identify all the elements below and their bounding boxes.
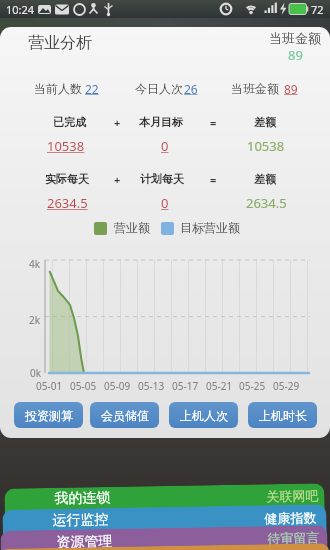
button[interactable] xyxy=(0,543,330,550)
button[interactable]: 上机时长 xyxy=(248,402,317,428)
staticText: 4k xyxy=(29,257,41,271)
staticText: 会员储值 xyxy=(101,408,149,423)
staticText: 05-21 xyxy=(206,379,233,393)
staticText: 05-09 xyxy=(104,379,131,393)
staticText: 上机时长 xyxy=(259,408,307,423)
staticText: 健康指数 xyxy=(264,509,317,526)
button[interactable]: 26 xyxy=(184,81,198,97)
staticText: 10538 xyxy=(247,137,285,155)
staticText: 计划每天 xyxy=(140,172,184,186)
staticText: 2k xyxy=(29,313,41,327)
button[interactable]: 会员储值 xyxy=(90,402,159,428)
staticText: 上机人次 xyxy=(180,408,228,423)
button[interactable]: 22 xyxy=(85,81,99,97)
staticText: 2634.5 xyxy=(246,194,287,212)
staticText: 营业分析 xyxy=(28,33,92,53)
staticText: + xyxy=(114,172,121,187)
staticText: 今日人次 xyxy=(135,81,183,96)
staticText: 本月目标 xyxy=(139,115,183,129)
staticText: 05-13 xyxy=(138,379,165,393)
staticText: + xyxy=(114,115,121,130)
staticText: 当班金额 xyxy=(231,81,279,96)
staticText: 已完成 xyxy=(53,115,86,129)
staticText: = xyxy=(210,115,217,130)
staticText: 0 xyxy=(161,137,169,155)
button[interactable]: 运行监控 xyxy=(2,504,328,550)
staticText: 0k xyxy=(30,366,42,380)
staticText: 05-29 xyxy=(273,379,300,393)
staticText: 89 xyxy=(288,46,303,64)
staticText: 运行监控 xyxy=(52,511,109,530)
button[interactable]: 我的连锁 xyxy=(4,483,326,550)
staticText: 05-01 xyxy=(36,379,63,393)
staticText: 投资测算 xyxy=(25,408,73,423)
staticText: 当班金额 xyxy=(269,30,321,46)
staticText: 资源管理 xyxy=(56,533,113,550)
staticText: 72 xyxy=(311,2,324,17)
staticText: 待审留言 xyxy=(267,529,320,546)
staticText: 05-25 xyxy=(239,379,266,393)
staticText: 当前人数 xyxy=(34,81,82,96)
staticText: 10:24 xyxy=(6,2,35,17)
staticText: 营业额 xyxy=(114,220,150,235)
button[interactable]: 89 xyxy=(284,81,298,97)
staticText: 差额 xyxy=(254,115,276,129)
staticText: 10538 xyxy=(47,137,85,155)
button[interactable]: 上机人次 xyxy=(169,402,238,428)
staticText: 2634.5 xyxy=(47,194,88,212)
button[interactable]: 资源管理 xyxy=(0,525,329,550)
staticText: = xyxy=(210,172,217,187)
staticText: 实际每天 xyxy=(45,172,89,186)
staticText: 差额 xyxy=(254,172,276,186)
staticText: 目标营业额 xyxy=(180,220,240,235)
staticText: 我的连锁 xyxy=(54,489,111,508)
button[interactable]: 投资测算 xyxy=(14,402,83,428)
staticText: 关联网吧 xyxy=(266,487,319,504)
staticText: 05-17 xyxy=(172,379,199,393)
staticText: 05-05 xyxy=(70,379,97,393)
staticText: 0 xyxy=(161,194,169,212)
